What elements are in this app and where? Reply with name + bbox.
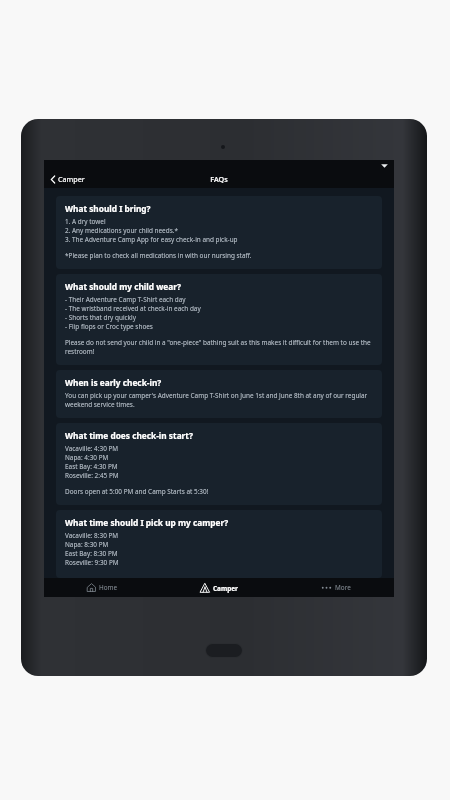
staticText: Vacaville: 4:30 PM: [65, 444, 119, 453]
staticText: Home: [99, 583, 118, 592]
staticText: Camper: [58, 174, 85, 184]
staticText: Roseville: 2:45 PM: [65, 471, 119, 480]
button[interactable]: What should I bring?: [56, 196, 382, 269]
staticText: 1. A dry towel: [65, 217, 106, 226]
staticText: 3. The Adventure Camp App for easy check…: [65, 235, 238, 244]
button[interactable]: When is early check-in?: [56, 370, 382, 418]
staticText: What should I bring?: [65, 203, 151, 214]
button[interactable]: Camper: [44, 171, 92, 187]
button[interactable]: Camper: [160, 579, 277, 597]
staticText: You can pick up your camper's Adventure …: [65, 391, 373, 409]
button[interactable]: Home button: [205, 643, 243, 658]
staticText: - Their Adventure Camp T-Shirt each day: [65, 295, 186, 304]
staticText: What time should I pick up my camper?: [65, 517, 229, 528]
staticText: More: [335, 583, 351, 592]
staticText: - Flip flops or Croc type shoes: [65, 322, 153, 331]
staticText: Vacaville: 8:30 PM: [65, 531, 119, 540]
staticText: When is early check-in?: [65, 377, 162, 388]
staticText: East Bay: 8:30 PM: [65, 549, 118, 558]
staticText: Doors open at 5:00 PM and Camp Starts at…: [65, 487, 209, 496]
staticText: 2. Any medications your child needs.*: [65, 226, 178, 235]
staticText: What time does check-in start?: [65, 430, 193, 441]
staticText: *Please plan to check all medications in…: [65, 251, 252, 260]
button[interactable]: What time should I pick up my camper?: [56, 510, 382, 578]
button[interactable]: What should my child wear?: [56, 274, 382, 365]
button[interactable]: Home: [44, 579, 160, 596]
staticText: Camper: [213, 584, 238, 593]
staticText: Roseville: 9:30 PM: [65, 558, 119, 567]
staticText: Please do not send your child in a "one-…: [65, 338, 373, 356]
staticText: What should my child wear?: [65, 281, 181, 292]
staticText: Napa: 8:30 PM: [65, 540, 109, 549]
button[interactable]: What time does check-in start?: [56, 423, 382, 505]
button[interactable]: More: [277, 579, 394, 596]
staticText: East Bay: 4:30 PM: [65, 462, 118, 471]
staticText: Napa: 4:30 PM: [65, 453, 109, 462]
staticText: FAQs: [210, 174, 228, 184]
staticText: - The wristband received at check-in eac…: [65, 304, 201, 313]
staticText: - Shorts that dry quickly: [65, 313, 136, 322]
